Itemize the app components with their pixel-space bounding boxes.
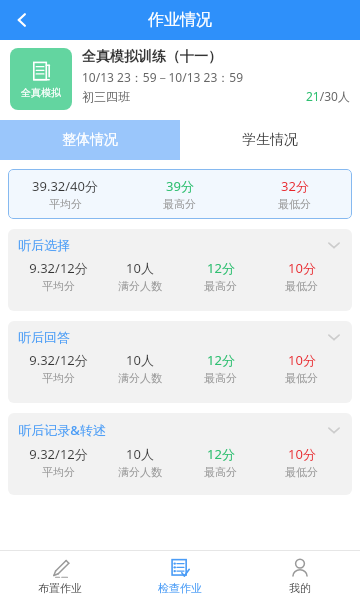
button[interactable]: 布置作业 [0, 551, 120, 600]
staticText: 最高分 [204, 465, 237, 479]
staticText: 我的 [289, 581, 311, 595]
staticText: 全真模拟训练（十一） [82, 48, 222, 66]
button[interactable]: 学生情况 [180, 120, 360, 160]
staticText: 平均分 [49, 197, 82, 211]
staticText: 整体情况 [62, 131, 118, 149]
staticText: 10分 [288, 259, 316, 277]
staticText: 9.32/12分 [29, 445, 88, 463]
staticText: 学生情况 [242, 131, 298, 149]
staticText: 满分人数 [118, 465, 162, 479]
button[interactable]: 听后选择 [8, 229, 352, 311]
button[interactable]: 39.32/40分 [8, 169, 352, 219]
staticText: 最低分 [278, 197, 311, 211]
staticText: 39分 [166, 177, 194, 195]
staticText: 平均分 [42, 465, 75, 479]
staticText: 最低分 [285, 279, 318, 293]
staticText: 最高分 [204, 371, 237, 385]
staticText: 12分 [207, 259, 235, 277]
staticText: 最高分 [163, 197, 196, 211]
staticText: 听后选择 [18, 237, 70, 253]
staticText: 满分人数 [118, 279, 162, 293]
staticText: 满分人数 [118, 371, 162, 385]
staticText: 平均分 [42, 371, 75, 385]
staticText: 10人 [126, 445, 154, 463]
button[interactable]: 听后记录&转述 [8, 413, 352, 495]
staticText: 平均分 [42, 279, 75, 293]
staticText: 12分 [207, 445, 235, 463]
staticText: 最低分 [285, 371, 318, 385]
staticText: 10/13 23：59－10/13 23：59 [82, 69, 243, 85]
staticText: 10人 [126, 351, 154, 369]
button[interactable]: 全真模拟 [0, 40, 360, 120]
staticText: 9.32/12分 [29, 351, 88, 369]
button[interactable]: 整体情况 [0, 120, 180, 160]
staticText: 布置作业 [38, 581, 82, 595]
staticText: 听后记录&转述 [18, 421, 106, 439]
staticText: 全真模拟 [21, 86, 61, 99]
button[interactable]: Back [0, 0, 44, 40]
button[interactable]: 检查作业 [120, 551, 240, 600]
staticText: 检查作业 [158, 581, 202, 595]
staticText: 10分 [288, 351, 316, 369]
staticText: 10分 [288, 445, 316, 463]
staticText: 最低分 [285, 465, 318, 479]
staticText: 初三四班 [82, 89, 130, 104]
staticText: 听后回答 [18, 329, 70, 345]
staticText: 21/30人 [306, 88, 350, 104]
staticText: 39.32/40分 [32, 177, 98, 195]
button[interactable]: 听后回答 [8, 321, 352, 403]
staticText: 最高分 [204, 279, 237, 293]
staticText: 12分 [207, 351, 235, 369]
button[interactable]: 我的 [240, 551, 360, 600]
staticText: 32分 [281, 177, 309, 195]
staticText: 10人 [126, 259, 154, 277]
staticText: 9.32/12分 [29, 259, 88, 277]
staticText: 作业情况 [148, 10, 212, 30]
